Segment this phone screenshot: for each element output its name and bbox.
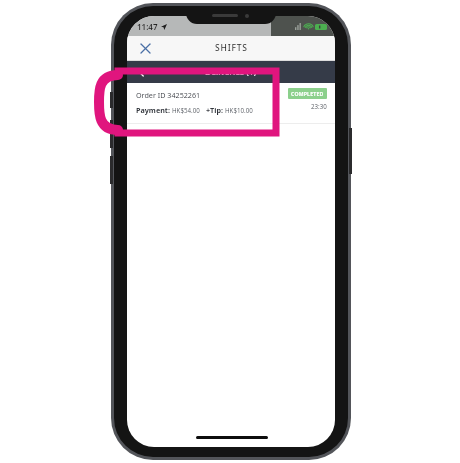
staticText: HK$10.00 xyxy=(225,106,253,114)
staticText: Order ID 34252261 xyxy=(136,90,201,100)
button[interactable]: Order ID 34252261 xyxy=(127,83,335,123)
button[interactable]: Close xyxy=(133,36,157,60)
staticText: Deliveries (1) xyxy=(205,66,257,78)
staticText: Payment: xyxy=(136,105,170,115)
staticText: SHIFTS xyxy=(215,42,248,54)
staticText: 23:30 xyxy=(311,102,327,110)
staticText: HK$54.00 xyxy=(172,106,200,114)
staticText: COMPLETED xyxy=(291,90,324,97)
staticText: 11:47 xyxy=(137,21,158,32)
button[interactable]: Back xyxy=(131,62,151,82)
staticText: +Tip: xyxy=(206,105,223,115)
